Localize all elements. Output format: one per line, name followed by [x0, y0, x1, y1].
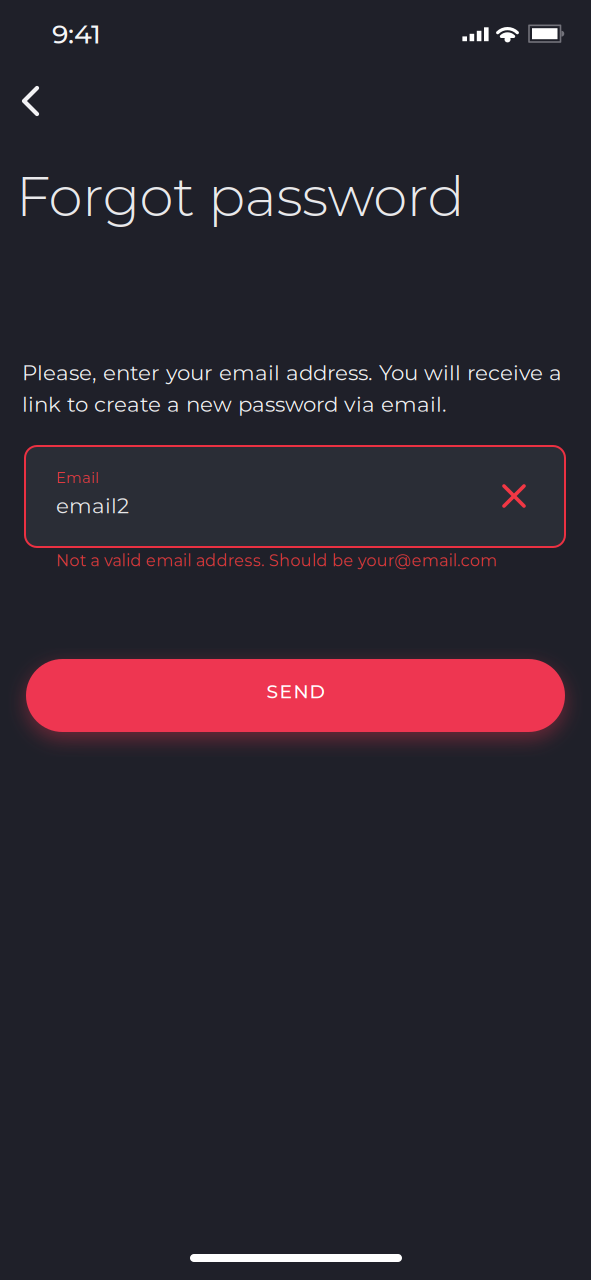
staticText: 9:41: [52, 18, 101, 50]
staticText: Please, enter your email address. You wi…: [22, 360, 562, 417]
staticText: Not a valid email address. Should be you…: [56, 551, 497, 570]
button[interactable]: Back: [8, 78, 52, 122]
staticText: Forgot password: [16, 164, 464, 229]
staticText: email2: [56, 493, 129, 518]
button[interactable]: SEND: [26, 659, 565, 732]
staticText: Email: [56, 469, 99, 486]
staticText: SEND: [266, 680, 324, 703]
button[interactable]: Clear email: [492, 474, 536, 518]
